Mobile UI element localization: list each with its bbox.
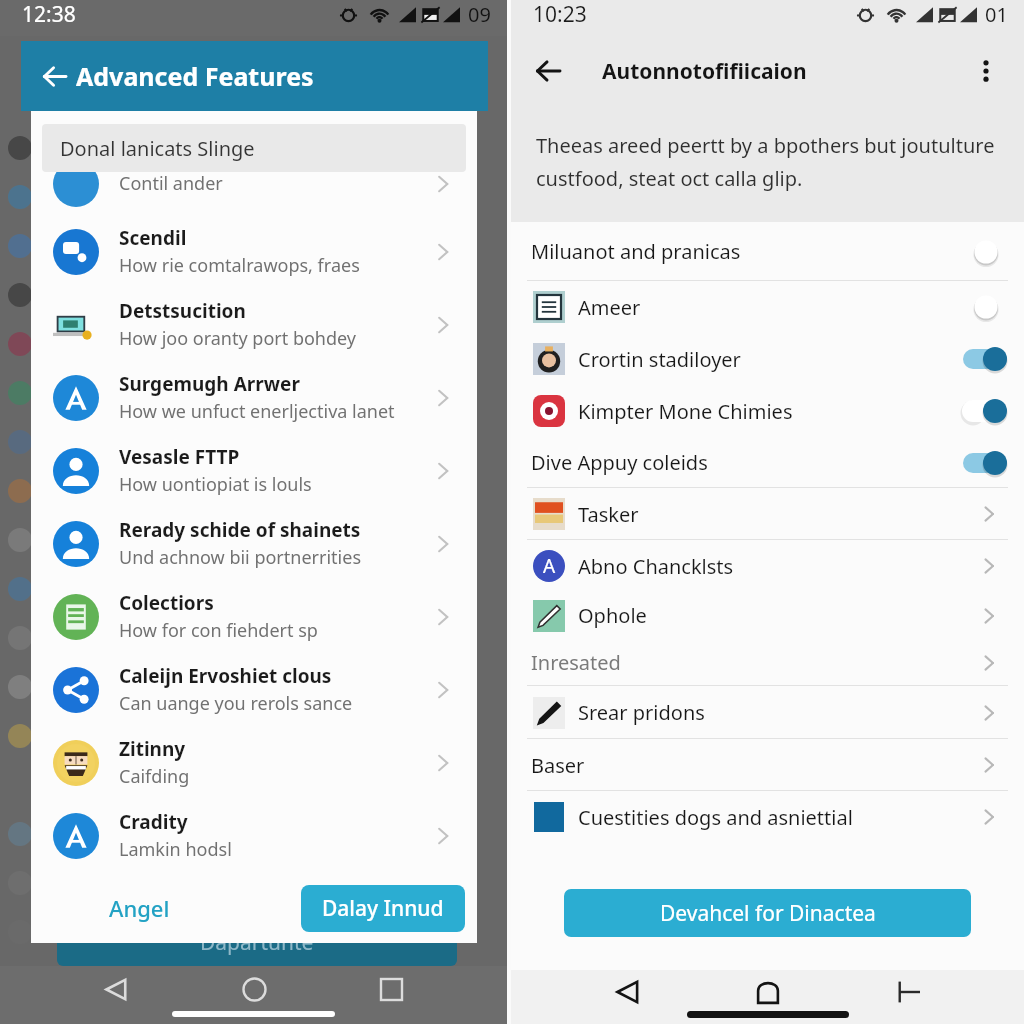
staticText: Lamkin hodsl xyxy=(119,837,232,862)
staticText: Srear pridons xyxy=(578,699,705,726)
staticText: Devahcel for Dinactea xyxy=(660,899,876,928)
button[interactable]: Ophole xyxy=(511,592,1024,639)
button[interactable]: Back xyxy=(606,970,650,1014)
button[interactable]: Surgemugh Arrwer xyxy=(31,361,477,434)
staticText: Advanced Features xyxy=(76,59,314,93)
button[interactable]: Back xyxy=(32,54,76,98)
staticText: Baser xyxy=(531,752,585,779)
staticText: Can uange you rerols sance xyxy=(119,691,353,716)
button[interactable]: Recents xyxy=(369,967,413,1011)
button[interactable]: Crortin stadiloyer xyxy=(511,333,1024,385)
staticText: 10:23 xyxy=(533,0,587,28)
button[interactable]: Dalay Innud xyxy=(301,885,465,932)
staticText: Donal lanicats Slinge xyxy=(60,135,255,162)
staticText: Scendil xyxy=(119,225,187,251)
button[interactable]: Vesasle FTTP xyxy=(31,434,477,507)
button[interactable]: Split screen xyxy=(885,970,929,1014)
staticText: Cuestities dogs and asniettial xyxy=(578,804,853,831)
button[interactable]: Dive Appuy coleids xyxy=(511,437,1024,488)
button[interactable]: Colectiors xyxy=(31,580,477,653)
button[interactable]: Back xyxy=(94,967,138,1011)
button[interactable]: Home xyxy=(232,967,276,1011)
button[interactable]: Rerady schide of shainets xyxy=(31,507,477,580)
staticText: Cradity xyxy=(119,809,188,835)
staticText: Inresated xyxy=(531,649,621,676)
staticText: 01 xyxy=(985,1,1008,28)
staticText: A xyxy=(543,553,556,579)
button[interactable]: Detstsucition xyxy=(31,288,477,361)
button[interactable]: Cradity xyxy=(31,799,477,872)
staticText: Ophole xyxy=(578,602,647,629)
button[interactable]: Inresated xyxy=(511,639,1024,686)
staticText: Tasker xyxy=(578,501,639,528)
button[interactable]: Srear pridons xyxy=(511,686,1024,739)
button[interactable]: Baser xyxy=(511,739,1024,791)
button[interactable]: Miluanot and pranicas xyxy=(511,222,1024,281)
button[interactable]: Kimpter Mone Chimies xyxy=(511,385,1024,437)
button[interactable]: Ameer xyxy=(511,281,1024,333)
staticText: Contil ander xyxy=(119,171,223,196)
button[interactable]: Contil ander xyxy=(31,152,477,215)
staticText: 09 xyxy=(468,1,491,28)
staticText: custfood, steat oct calla glip. xyxy=(536,165,803,192)
staticText: 12:38 xyxy=(22,0,76,28)
staticText: Angel xyxy=(109,893,170,923)
button[interactable]: Scendil xyxy=(31,215,477,288)
staticText: Dive Appuy coleids xyxy=(531,449,708,476)
button[interactable]: Devahcel for Dinactea xyxy=(564,889,971,937)
staticText: Detstsucition xyxy=(119,298,246,324)
button[interactable]: Donal lanicats Slinge xyxy=(42,124,466,172)
staticText: Ameer xyxy=(578,294,641,321)
button[interactable]: Caleijn Ervoshiet clous xyxy=(31,653,477,726)
staticText: Caifding xyxy=(119,764,190,789)
staticText: Dalay Innud xyxy=(322,894,444,923)
staticText: Autonnotofifiicaion xyxy=(602,57,807,86)
button[interactable]: Angel xyxy=(95,883,184,933)
staticText: Miluanot and pranicas xyxy=(531,238,741,265)
staticText: Zitinny xyxy=(119,736,186,762)
staticText: Und achnow bii portnerrities xyxy=(119,545,362,570)
staticText: Abno Chancklsts xyxy=(578,553,734,580)
staticText: Caleijn Ervoshiet clous xyxy=(119,663,332,689)
button[interactable]: Cuestities dogs and asniettial xyxy=(511,791,1024,843)
staticText: How we unfuct enerljectiva lanet xyxy=(119,399,395,424)
button[interactable]: Back xyxy=(524,47,572,95)
staticText: How rie comtalrawops, fraes xyxy=(119,253,360,278)
staticText: How uontiopiat is louls xyxy=(119,472,312,497)
staticText: Vesasle FTTP xyxy=(119,444,240,470)
staticText: How for con fiehdert sp xyxy=(119,618,318,643)
staticText: How joo oranty port bohdey xyxy=(119,326,357,351)
button[interactable]: Zitinny xyxy=(31,726,477,799)
staticText: Surgemugh Arrwer xyxy=(119,371,300,397)
staticText: Rerady schide of shainets xyxy=(119,517,361,543)
staticText: Kimpter Mone Chimies xyxy=(578,398,793,425)
staticText: Crortin stadiloyer xyxy=(578,346,741,373)
button[interactable]: More options xyxy=(964,49,1008,93)
button[interactable]: Tasker xyxy=(511,488,1024,540)
staticText: Dapartunte xyxy=(200,928,314,957)
button[interactable]: Home xyxy=(746,970,790,1014)
staticText: Colectiors xyxy=(119,590,214,616)
staticText: Theeas areed peertt by a bpothers but jo… xyxy=(536,132,995,159)
button[interactable]: A xyxy=(511,540,1024,592)
